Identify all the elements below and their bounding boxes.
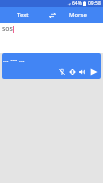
staticText: Morse [69, 11, 87, 19]
staticText: Text [17, 11, 29, 19]
staticText: ... --- ... [3, 55, 25, 65]
button[interactable]: Text [0, 7, 46, 23]
button[interactable]: Play [89, 67, 99, 77]
button[interactable]: Sound [77, 67, 87, 77]
staticText: sos [2, 24, 13, 34]
staticText: 09:58 [88, 0, 101, 7]
button[interactable]: Swap translation direction [46, 7, 59, 23]
button[interactable]: Vibration [67, 67, 77, 77]
button[interactable]: Flashlight [57, 67, 67, 77]
button[interactable]: Morse [59, 7, 97, 23]
staticText: 64% [72, 0, 82, 7]
